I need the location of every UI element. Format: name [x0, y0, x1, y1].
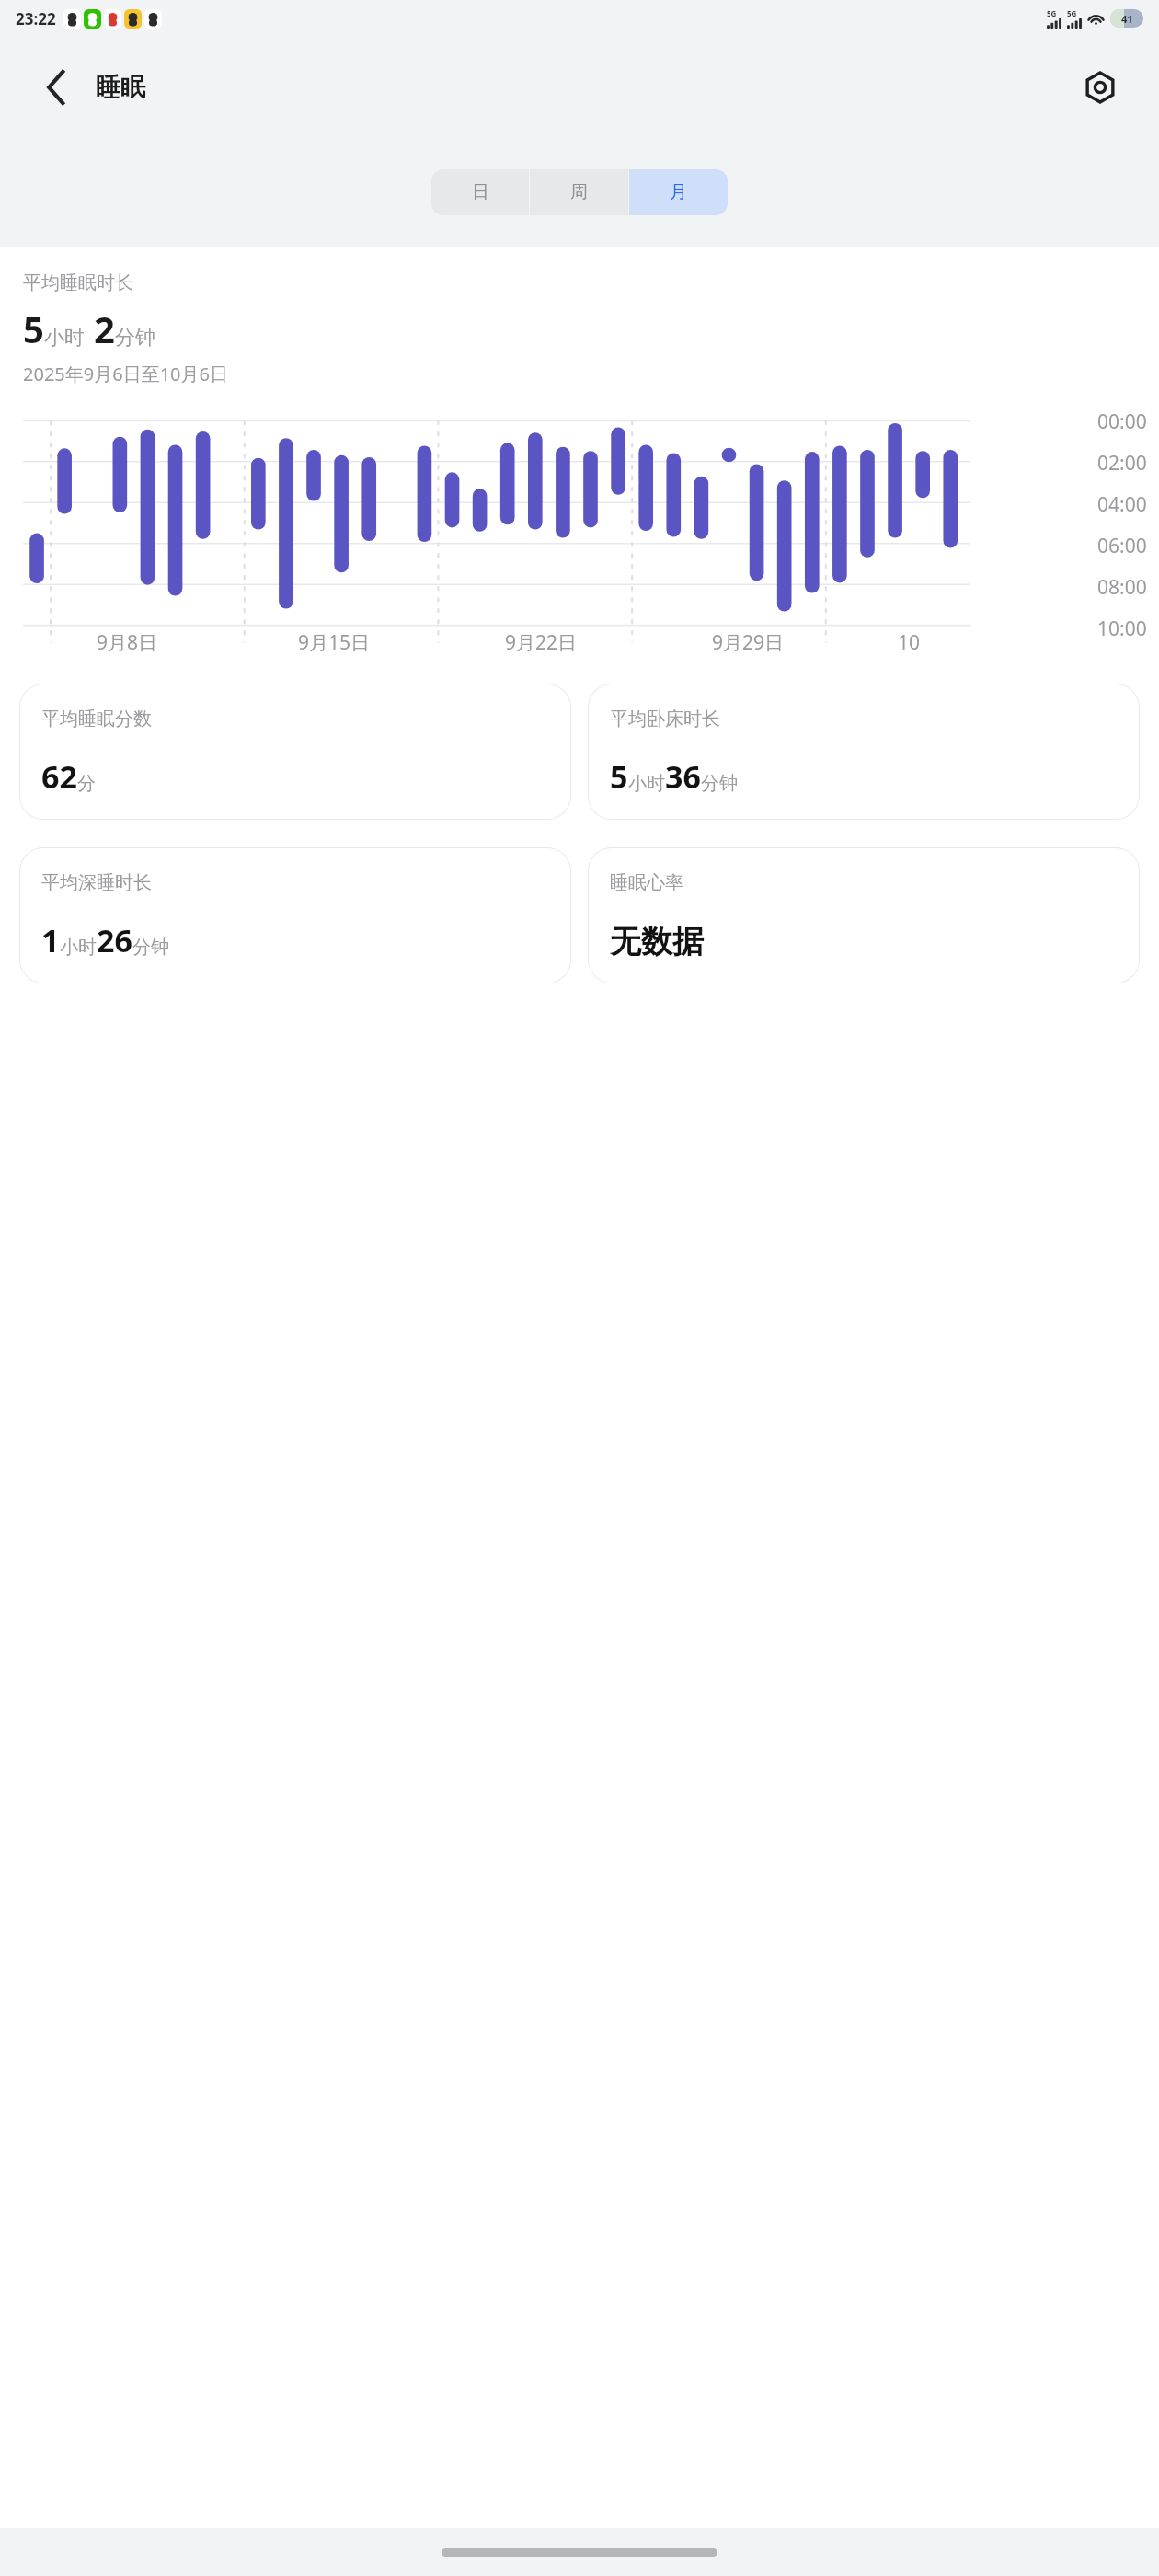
staticText: 平均睡眠分数: [41, 707, 152, 730]
staticText: 62: [41, 755, 77, 798]
button[interactable]: 设置: [1073, 60, 1128, 115]
button[interactable]: 周: [530, 169, 628, 215]
staticText: 无数据: [610, 922, 704, 961]
staticText: 小时: [44, 325, 85, 351]
button[interactable]: 返回: [31, 62, 83, 113]
button[interactable]: 平均睡眠分数: [19, 684, 571, 820]
staticText: 23:22: [16, 8, 56, 29]
staticText: 2025年9月6日至10月6日: [23, 362, 228, 386]
staticText: 平均深睡时长: [41, 871, 152, 894]
staticText: 周: [570, 181, 588, 203]
staticText: 9月15日: [298, 629, 371, 656]
staticText: 10:00: [1097, 615, 1147, 642]
staticText: 41: [1121, 12, 1133, 26]
staticText: 9月29日: [712, 629, 785, 656]
staticText: 9月8日: [97, 629, 158, 656]
staticText: 睡眠: [96, 72, 145, 103]
button[interactable]: 日: [431, 169, 529, 215]
button[interactable]: 平均深睡时长: [19, 847, 571, 983]
staticText: 36: [665, 755, 701, 798]
staticText: 小时: [60, 936, 97, 959]
staticText: 2: [94, 304, 115, 353]
button[interactable]: 月: [629, 169, 728, 215]
staticText: 1: [41, 919, 60, 961]
button[interactable]: 平均卧床时长: [588, 684, 1140, 820]
button[interactable]: 睡眠心率: [588, 847, 1140, 983]
staticText: 04:00: [1097, 491, 1147, 518]
staticText: 日: [472, 181, 489, 203]
staticText: 平均睡眠时长: [23, 271, 133, 294]
staticText: 00:00: [1097, 408, 1147, 435]
staticText: 平均卧床时长: [610, 707, 720, 730]
staticText: 06:00: [1097, 533, 1147, 559]
staticText: 02:00: [1097, 450, 1147, 477]
staticText: 分: [77, 772, 96, 795]
staticText: 5G: [1047, 8, 1057, 18]
staticText: 分钟: [132, 936, 169, 959]
staticText: 26: [97, 919, 132, 961]
staticText: 分钟: [701, 772, 738, 795]
staticText: 分钟: [115, 325, 155, 351]
staticText: 月: [670, 181, 687, 203]
staticText: 08:00: [1097, 574, 1147, 601]
staticText: 10: [898, 629, 921, 656]
staticText: 9月22日: [505, 629, 578, 656]
staticText: 睡眠心率: [610, 871, 683, 894]
staticText: 5: [610, 755, 628, 798]
staticText: 小时: [628, 772, 665, 795]
staticText: 5G: [1067, 8, 1077, 18]
staticText: 5: [23, 304, 44, 353]
